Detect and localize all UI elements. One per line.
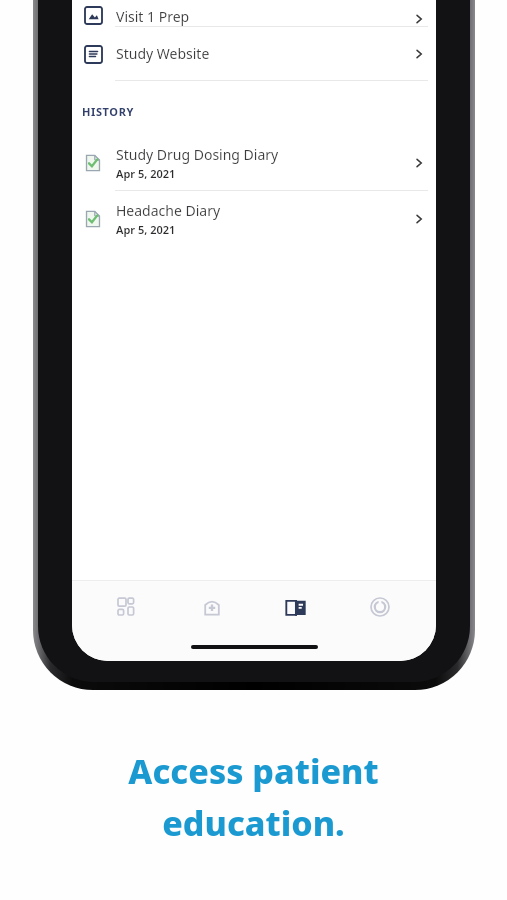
button[interactable]: Study visits xyxy=(184,581,240,633)
staticText: education. xyxy=(162,800,345,846)
button[interactable]: Education xyxy=(268,581,324,633)
button[interactable]: Study Website xyxy=(72,27,436,80)
button[interactable]: Visit 1 Prep xyxy=(72,0,436,26)
button[interactable]: Study Drug Dosing Diary xyxy=(72,135,436,190)
button[interactable]: Headache Diary xyxy=(72,191,436,246)
staticText: Visit 1 Prep xyxy=(116,7,190,26)
button[interactable]: Progress xyxy=(352,581,408,633)
staticText: HISTORY xyxy=(82,104,134,119)
staticText: Study Drug Dosing Diary xyxy=(116,145,279,164)
staticText: Headache Diary xyxy=(116,201,221,220)
staticText: Apr 5, 2021 xyxy=(116,166,176,181)
staticText: Access patient xyxy=(128,748,379,794)
staticText: Apr 5, 2021 xyxy=(116,222,176,237)
staticText: Study Website xyxy=(116,44,210,63)
button[interactable]: Dashboard xyxy=(100,581,156,633)
